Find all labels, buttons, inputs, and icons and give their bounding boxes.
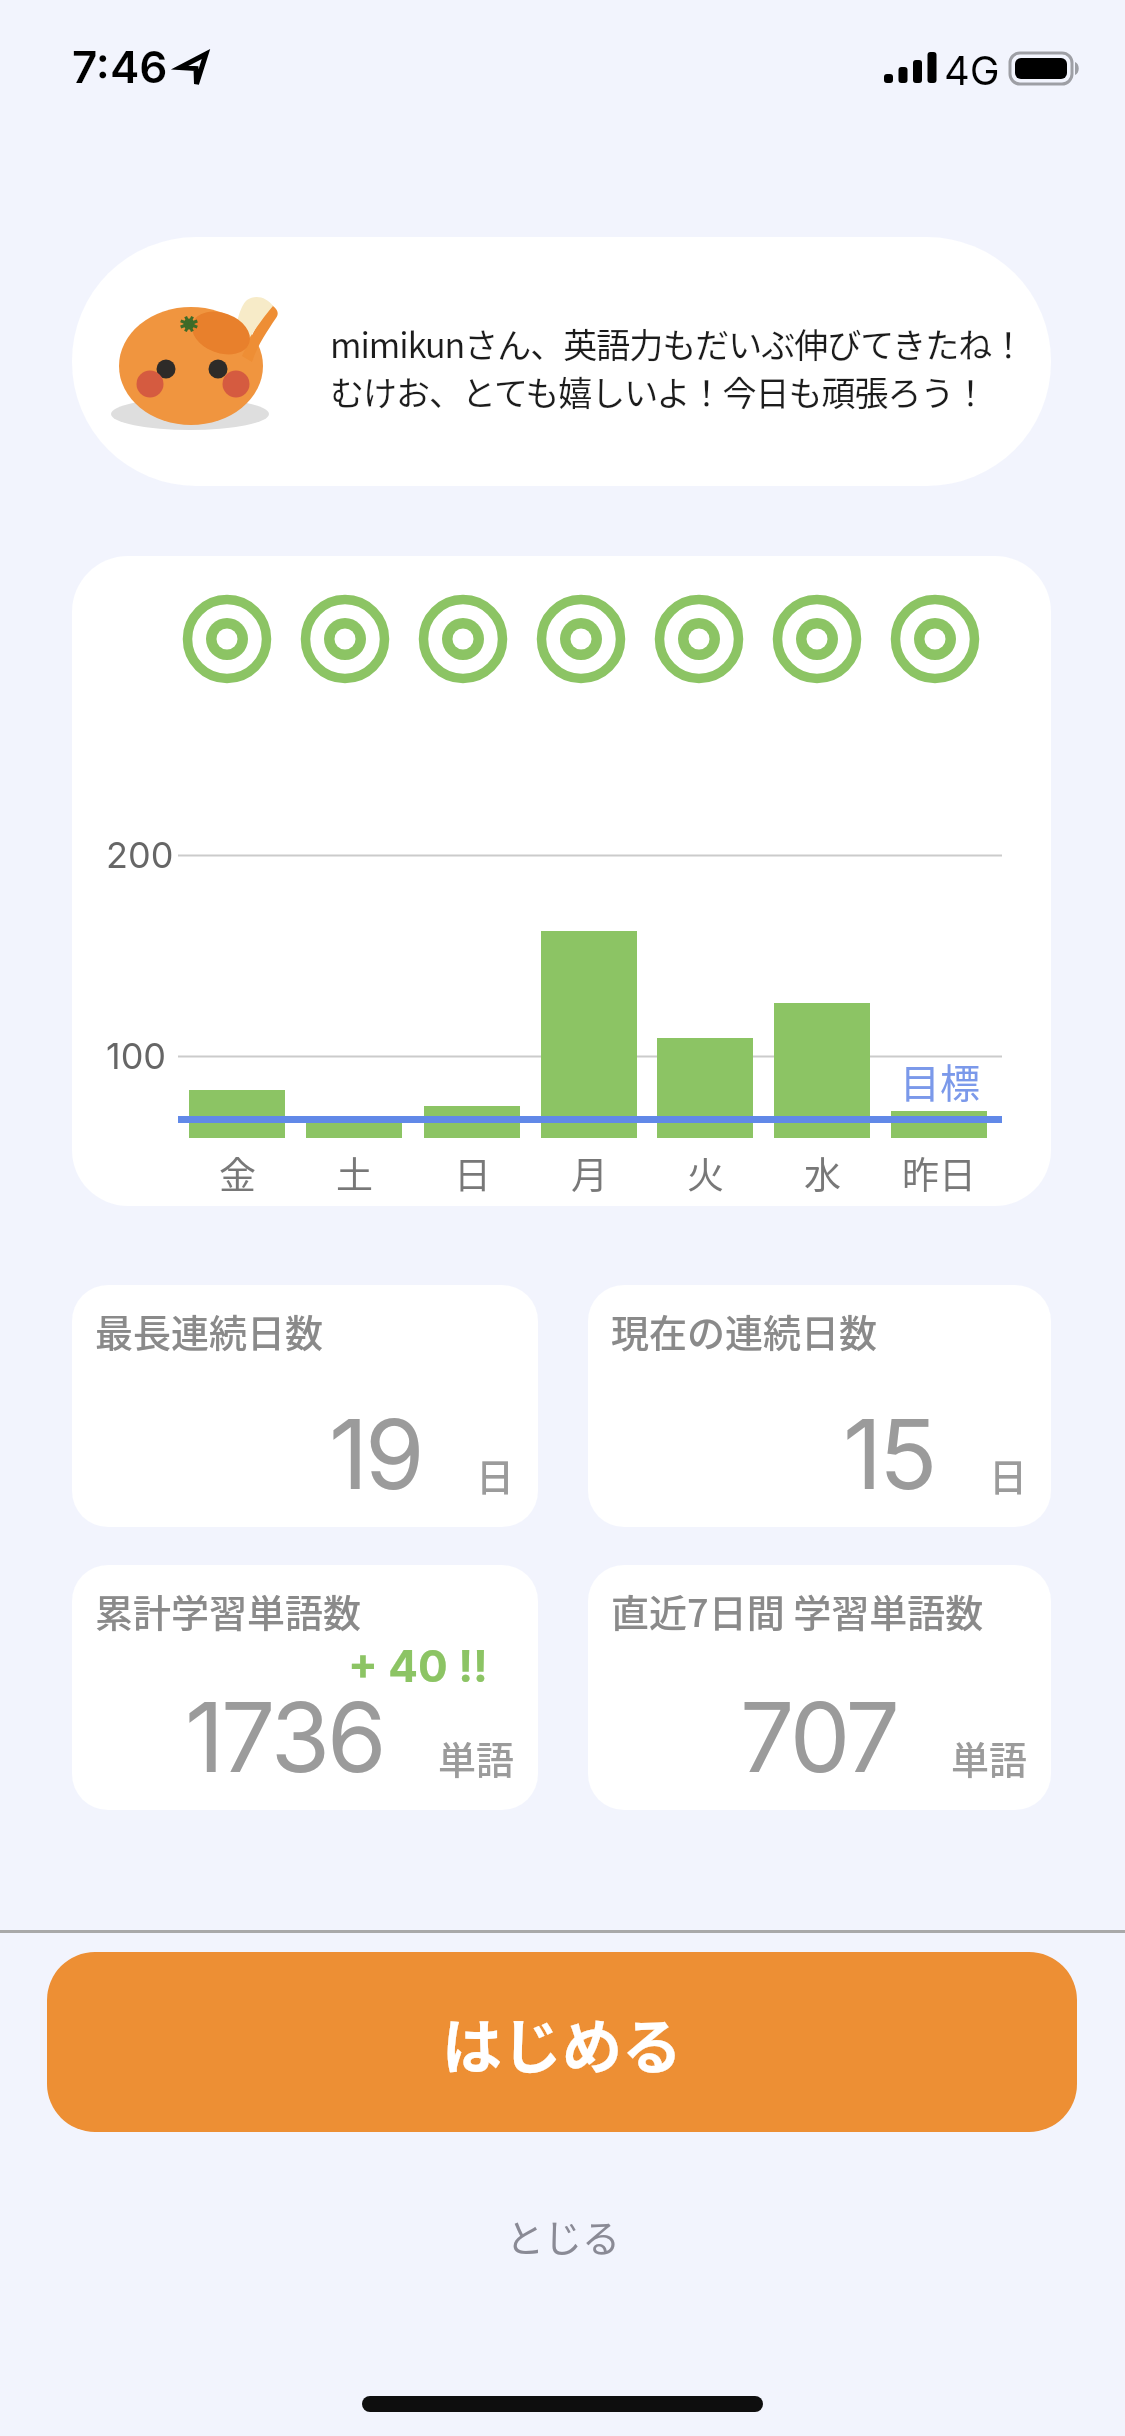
staticText: 日: [454, 1146, 491, 1200]
staticText: 最長連続日数: [95, 1303, 324, 1358]
staticText: 単語: [951, 1730, 1028, 1785]
staticText: 水: [804, 1146, 841, 1200]
staticText: 日: [476, 1447, 515, 1502]
staticText: mimikunさん、英語力もだいぶ伸びてきたね！ むけお、とても嬉しいよ！今日も…: [330, 319, 1025, 415]
staticText: 707: [740, 1679, 897, 1795]
staticText: 7:46: [72, 40, 168, 93]
button[interactable]: とじる: [480, 2195, 646, 2275]
button[interactable]: 累計学習単語数: [72, 1565, 538, 1810]
staticText: 100: [106, 1034, 167, 1078]
staticText: とじる: [506, 2208, 621, 2263]
staticText: 土: [336, 1146, 373, 1200]
button[interactable]: 現在の連続日数: [588, 1285, 1051, 1527]
staticText: 火: [687, 1146, 724, 1200]
staticText: 直近7日間 学習単語数: [611, 1583, 984, 1638]
button[interactable]: 最長連続日数: [72, 1285, 538, 1527]
staticText: 昨日: [902, 1146, 976, 1200]
staticText: 金: [219, 1146, 256, 1200]
button[interactable]: はじめる: [47, 1952, 1077, 2132]
staticText: + 40 !!: [348, 1639, 488, 1692]
staticText: 単語: [438, 1730, 515, 1785]
staticText: 19: [329, 1396, 422, 1512]
staticText: はじめる: [442, 1999, 682, 2086]
staticText: 4G: [944, 46, 1000, 94]
staticText: 日: [989, 1447, 1028, 1502]
staticText: 1736: [185, 1679, 384, 1795]
staticText: 15: [843, 1396, 935, 1512]
button[interactable]: 直近7日間 学習単語数: [588, 1565, 1051, 1810]
staticText: 目標: [900, 1052, 980, 1110]
staticText: 200: [106, 833, 174, 877]
staticText: 月: [571, 1146, 608, 1200]
staticText: 現在の連続日数: [611, 1303, 878, 1358]
staticText: 累計学習単語数: [95, 1583, 362, 1638]
